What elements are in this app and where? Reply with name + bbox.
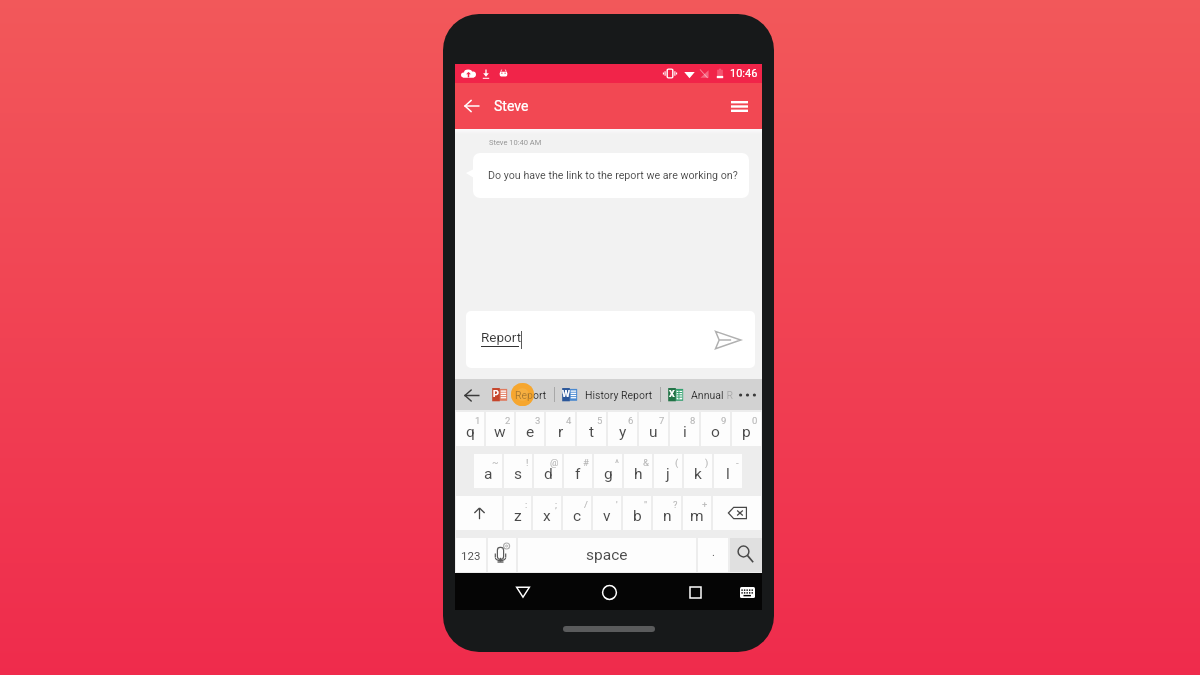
staticText: w (494, 423, 506, 441)
button[interactable]: 6 (608, 412, 637, 446)
button[interactable]: ? (653, 496, 681, 530)
staticText: 6 (628, 415, 634, 426)
staticText: # (583, 457, 589, 468)
button[interactable]: @ (534, 454, 562, 488)
button[interactable]: . (698, 538, 728, 572)
button[interactable]: / (563, 496, 591, 530)
button[interactable]: P (491, 379, 540, 410)
staticText: space (586, 546, 628, 564)
button[interactable]: space (518, 538, 696, 572)
staticText: 5 (597, 415, 603, 426)
staticText: q (466, 423, 475, 441)
staticText: j (666, 465, 670, 483)
staticText: h (634, 465, 643, 483)
staticText: u (649, 423, 658, 441)
staticText: x (543, 507, 551, 525)
staticText: + (702, 499, 708, 510)
staticText: ' (616, 499, 618, 510)
staticText: z (514, 507, 522, 525)
button[interactable]: W (561, 379, 653, 410)
staticText: d (544, 465, 553, 483)
staticText: k (694, 465, 702, 483)
staticText: ! (526, 457, 529, 468)
button[interactable]: & (624, 454, 652, 488)
button[interactable]: ( (654, 454, 682, 488)
button[interactable]: Voice input (488, 538, 516, 572)
staticText: 7 (659, 415, 665, 426)
staticText: n (663, 507, 672, 525)
staticText: ~ (492, 457, 499, 468)
staticText: s (514, 465, 522, 483)
button[interactable]: 3 (516, 412, 544, 446)
staticText: ( (675, 457, 679, 468)
button[interactable]: 8 (670, 412, 699, 446)
staticText: p (742, 423, 751, 441)
button[interactable]: More suggestions (735, 383, 759, 407)
button[interactable]: 7 (639, 412, 668, 446)
staticText: History Report (585, 389, 653, 401)
staticText: Steve 10:40 AM (489, 138, 542, 147)
staticText: ) (705, 457, 709, 468)
button[interactable]: Recents (679, 576, 711, 608)
button[interactable]: 9 (701, 412, 730, 446)
staticText: ^ (615, 457, 619, 468)
staticText: v (603, 507, 611, 525)
staticText: b (633, 507, 642, 525)
button[interactable]: - (714, 454, 742, 488)
staticText: e (526, 423, 535, 441)
staticText: & (643, 457, 649, 468)
button[interactable]: Send (715, 331, 741, 349)
button[interactable]: Back (460, 383, 484, 407)
button[interactable]: Back (452, 86, 492, 126)
staticText: . (712, 546, 715, 559)
button[interactable]: 4 (546, 412, 575, 446)
staticText: a (484, 465, 493, 483)
button[interactable]: ^ (594, 454, 622, 488)
button[interactable]: 5 (577, 412, 606, 446)
button[interactable]: ' (593, 496, 621, 530)
staticText: P (493, 389, 499, 400)
staticText: i (683, 423, 687, 441)
button[interactable]: " (623, 496, 651, 530)
staticText: Annual (691, 389, 724, 401)
button[interactable]: Report (466, 311, 755, 368)
staticText: : (525, 499, 528, 510)
button[interactable]: Shift (456, 496, 502, 530)
staticText: 3 (535, 415, 541, 426)
staticText: 4 (566, 415, 572, 426)
button[interactable]: Home (593, 576, 625, 608)
staticText: W (562, 389, 570, 400)
button[interactable]: ~ (474, 454, 502, 488)
button[interactable]: ) (684, 454, 712, 488)
staticText: Report (515, 389, 547, 401)
button[interactable]: 0 (732, 412, 761, 446)
button[interactable]: 1 (456, 412, 484, 446)
button[interactable]: ! (504, 454, 532, 488)
staticText: ? (673, 499, 678, 510)
button[interactable]: 2 (486, 412, 514, 446)
staticText: / (584, 499, 588, 510)
button[interactable]: 123 (456, 538, 486, 572)
button[interactable]: Backspace (713, 496, 761, 530)
button[interactable]: # (564, 454, 592, 488)
button[interactable]: Search (730, 538, 762, 572)
staticText: f (575, 465, 581, 483)
staticText: Steve (494, 98, 529, 114)
button[interactable]: + (683, 496, 711, 530)
button[interactable]: Menu (717, 84, 761, 128)
button[interactable]: Switch keyboard (733, 578, 761, 606)
staticText: Do you have the link to the report we ar… (488, 169, 738, 182)
button[interactable]: Do you have the link to the report we ar… (473, 153, 749, 198)
staticText: g (604, 465, 613, 483)
button[interactable]: ; (533, 496, 561, 530)
staticText: t (589, 423, 595, 441)
staticText: Report (481, 329, 522, 345)
button[interactable]: : (504, 496, 531, 530)
staticText: r (558, 423, 564, 441)
staticText: 123 (461, 549, 481, 562)
staticText: m (690, 507, 704, 525)
button[interactable]: X (667, 379, 734, 410)
staticText: X (669, 389, 675, 400)
staticText: 0 (752, 415, 758, 426)
button[interactable]: Back (507, 576, 539, 608)
